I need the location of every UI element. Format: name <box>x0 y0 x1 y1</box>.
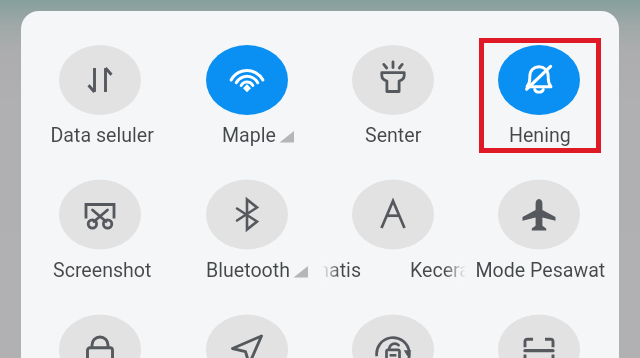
button[interactable]: Senter <box>332 38 454 154</box>
button[interactable]: Bluetooth <box>186 172 308 288</box>
button[interactable]: Lokasi <box>186 307 308 358</box>
button[interactable]: Kecerahan Otomatis <box>332 172 454 288</box>
button[interactable]: Maple <box>186 38 308 154</box>
button[interactable]: Putar otomatis <box>332 307 454 358</box>
button[interactable]: Pindai kode QR <box>478 307 600 358</box>
button[interactable]: Screenshot <box>39 172 161 288</box>
button[interactable]: Data seluler <box>39 38 161 154</box>
button[interactable]: Kunci layar <box>39 307 161 358</box>
button[interactable]: Mode Pesawat <box>478 172 600 288</box>
button[interactable]: Hening <box>478 38 600 154</box>
